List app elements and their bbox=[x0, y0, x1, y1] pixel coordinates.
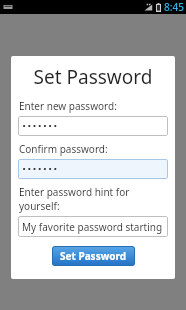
button[interactable]: My favorite password starting with bbox=[18, 216, 168, 237]
button[interactable]: Set Password bbox=[52, 246, 135, 266]
button[interactable] bbox=[18, 159, 168, 179]
staticText: Set Password bbox=[18, 64, 168, 90]
staticText: Set Password bbox=[60, 249, 127, 263]
staticText: My favorite password starting with bbox=[22, 220, 164, 234]
staticText: Confirm password: bbox=[19, 142, 108, 156]
staticText: Enter password hint for yourself: bbox=[19, 185, 168, 213]
staticText: Enter new password: bbox=[19, 99, 117, 113]
button[interactable] bbox=[18, 116, 168, 136]
staticText: 8:45 bbox=[164, 0, 184, 14]
